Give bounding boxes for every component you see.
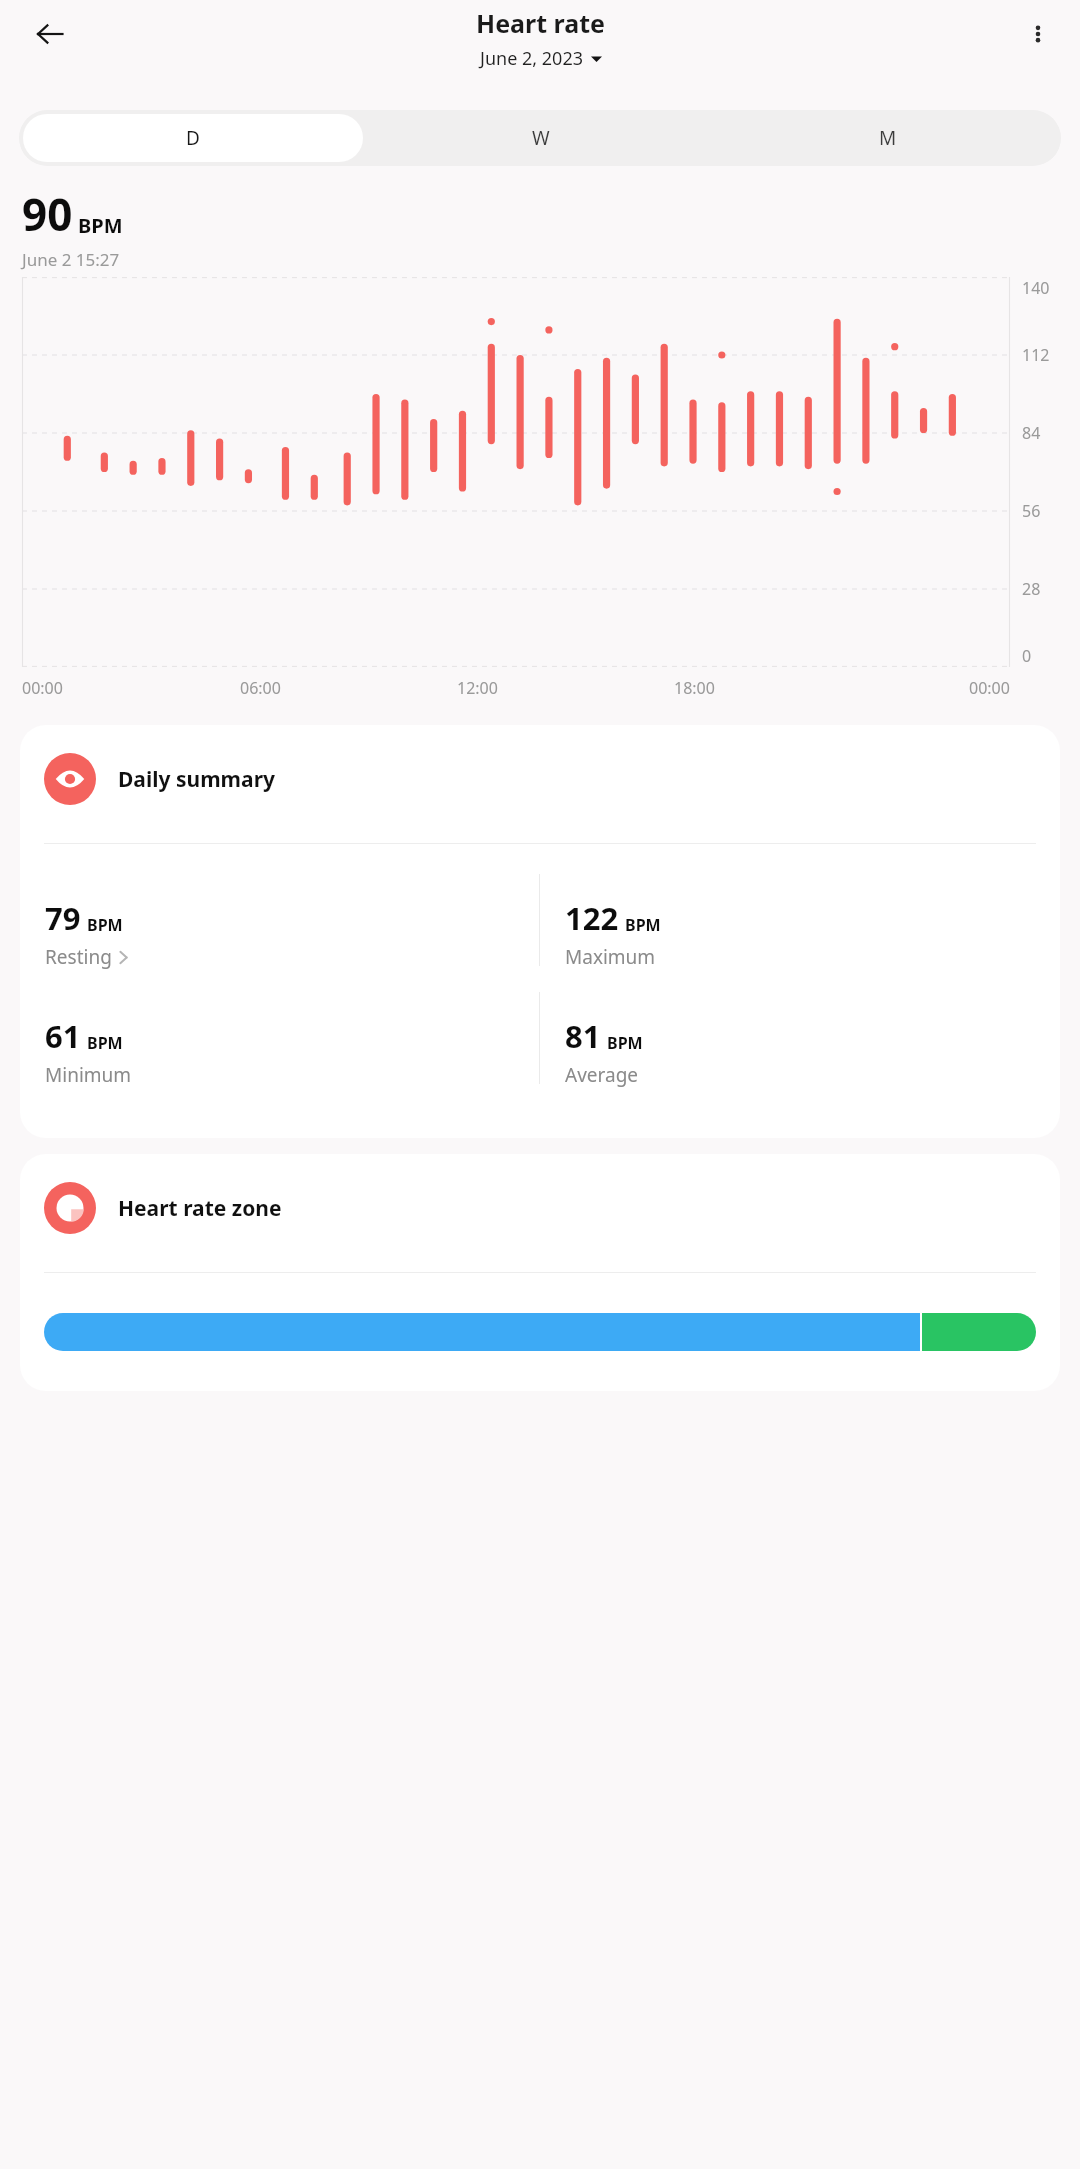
button[interactable]: D [23, 114, 363, 162]
staticText: 06:00 [240, 677, 281, 699]
staticText: Heart rate zone [118, 1194, 282, 1223]
staticText: W [532, 125, 550, 151]
staticText: Minimum [45, 1062, 132, 1088]
staticText: 79 [45, 897, 81, 939]
button[interactable]: June 2, 2023 [480, 46, 602, 71]
button[interactable]: Back [20, 4, 80, 64]
staticText: M [879, 125, 897, 151]
staticText: 18:00 [674, 677, 715, 699]
staticText: 61 [45, 1015, 81, 1057]
button[interactable]: More options [1010, 6, 1066, 62]
staticText: 56 [1022, 500, 1041, 522]
staticText: BPM [87, 1032, 123, 1054]
staticText: 90 [22, 184, 73, 244]
button[interactable]: M [718, 114, 1057, 162]
staticText: 122 [565, 897, 619, 939]
staticText: June 2 15:27 [22, 248, 120, 271]
staticText: BPM [625, 914, 661, 936]
staticText: 112 [1022, 344, 1050, 366]
staticText: Heart rate [476, 6, 605, 40]
staticText: BPM [78, 212, 123, 239]
button[interactable]: 81 [540, 992, 1060, 1110]
staticText: 12:00 [457, 677, 498, 699]
button[interactable]: 122 [540, 874, 1060, 992]
staticText: 28 [1022, 578, 1041, 600]
staticText: 84 [1022, 422, 1041, 444]
staticText: BPM [87, 914, 123, 936]
staticText: 00:00 [969, 677, 1010, 699]
button[interactable]: W [371, 114, 710, 162]
staticText: 140 [1022, 277, 1050, 299]
staticText: Average [565, 1062, 639, 1088]
staticText: Maximum [565, 944, 656, 970]
staticText: 0 [1022, 645, 1032, 667]
staticText: Daily summary [118, 765, 276, 794]
button[interactable]: 61 [20, 992, 539, 1110]
staticText: 00:00 [22, 677, 63, 699]
staticText: June 2, 2023 [480, 46, 583, 71]
staticText: D [186, 125, 200, 151]
staticText: Resting [45, 944, 112, 970]
staticText: BPM [607, 1032, 643, 1054]
button[interactable]: 79 [20, 874, 539, 992]
staticText: 81 [565, 1015, 601, 1057]
